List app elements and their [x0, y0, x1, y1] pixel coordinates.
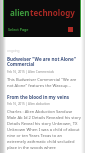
button[interactable]: Budweiser "We are not Alone" Commercial: [7, 56, 81, 89]
staticText: This Budweiser Commercial "We are not Al…: [7, 77, 81, 89]
button[interactable]: Select Page: [8, 27, 29, 32]
staticText: Feb 16, 2015 | Alien abduction: [7, 102, 50, 106]
staticText: Feb 16, 2015 | Alien Commercials: [7, 70, 55, 74]
staticText: Charles : Alien Abduction Sanduse Male A…: [7, 109, 81, 151]
staticText: From the blood in my veins: [7, 94, 69, 100]
button[interactable]: From the blood in my veins: [7, 94, 81, 151]
button[interactable]: alien: [10, 7, 75, 18]
staticText: ongoing: [7, 49, 20, 53]
staticText: alien: [10, 7, 30, 18]
staticText: Budweiser "We are not Alone" Commercial: [7, 56, 81, 68]
staticText: technology: [30, 7, 75, 18]
